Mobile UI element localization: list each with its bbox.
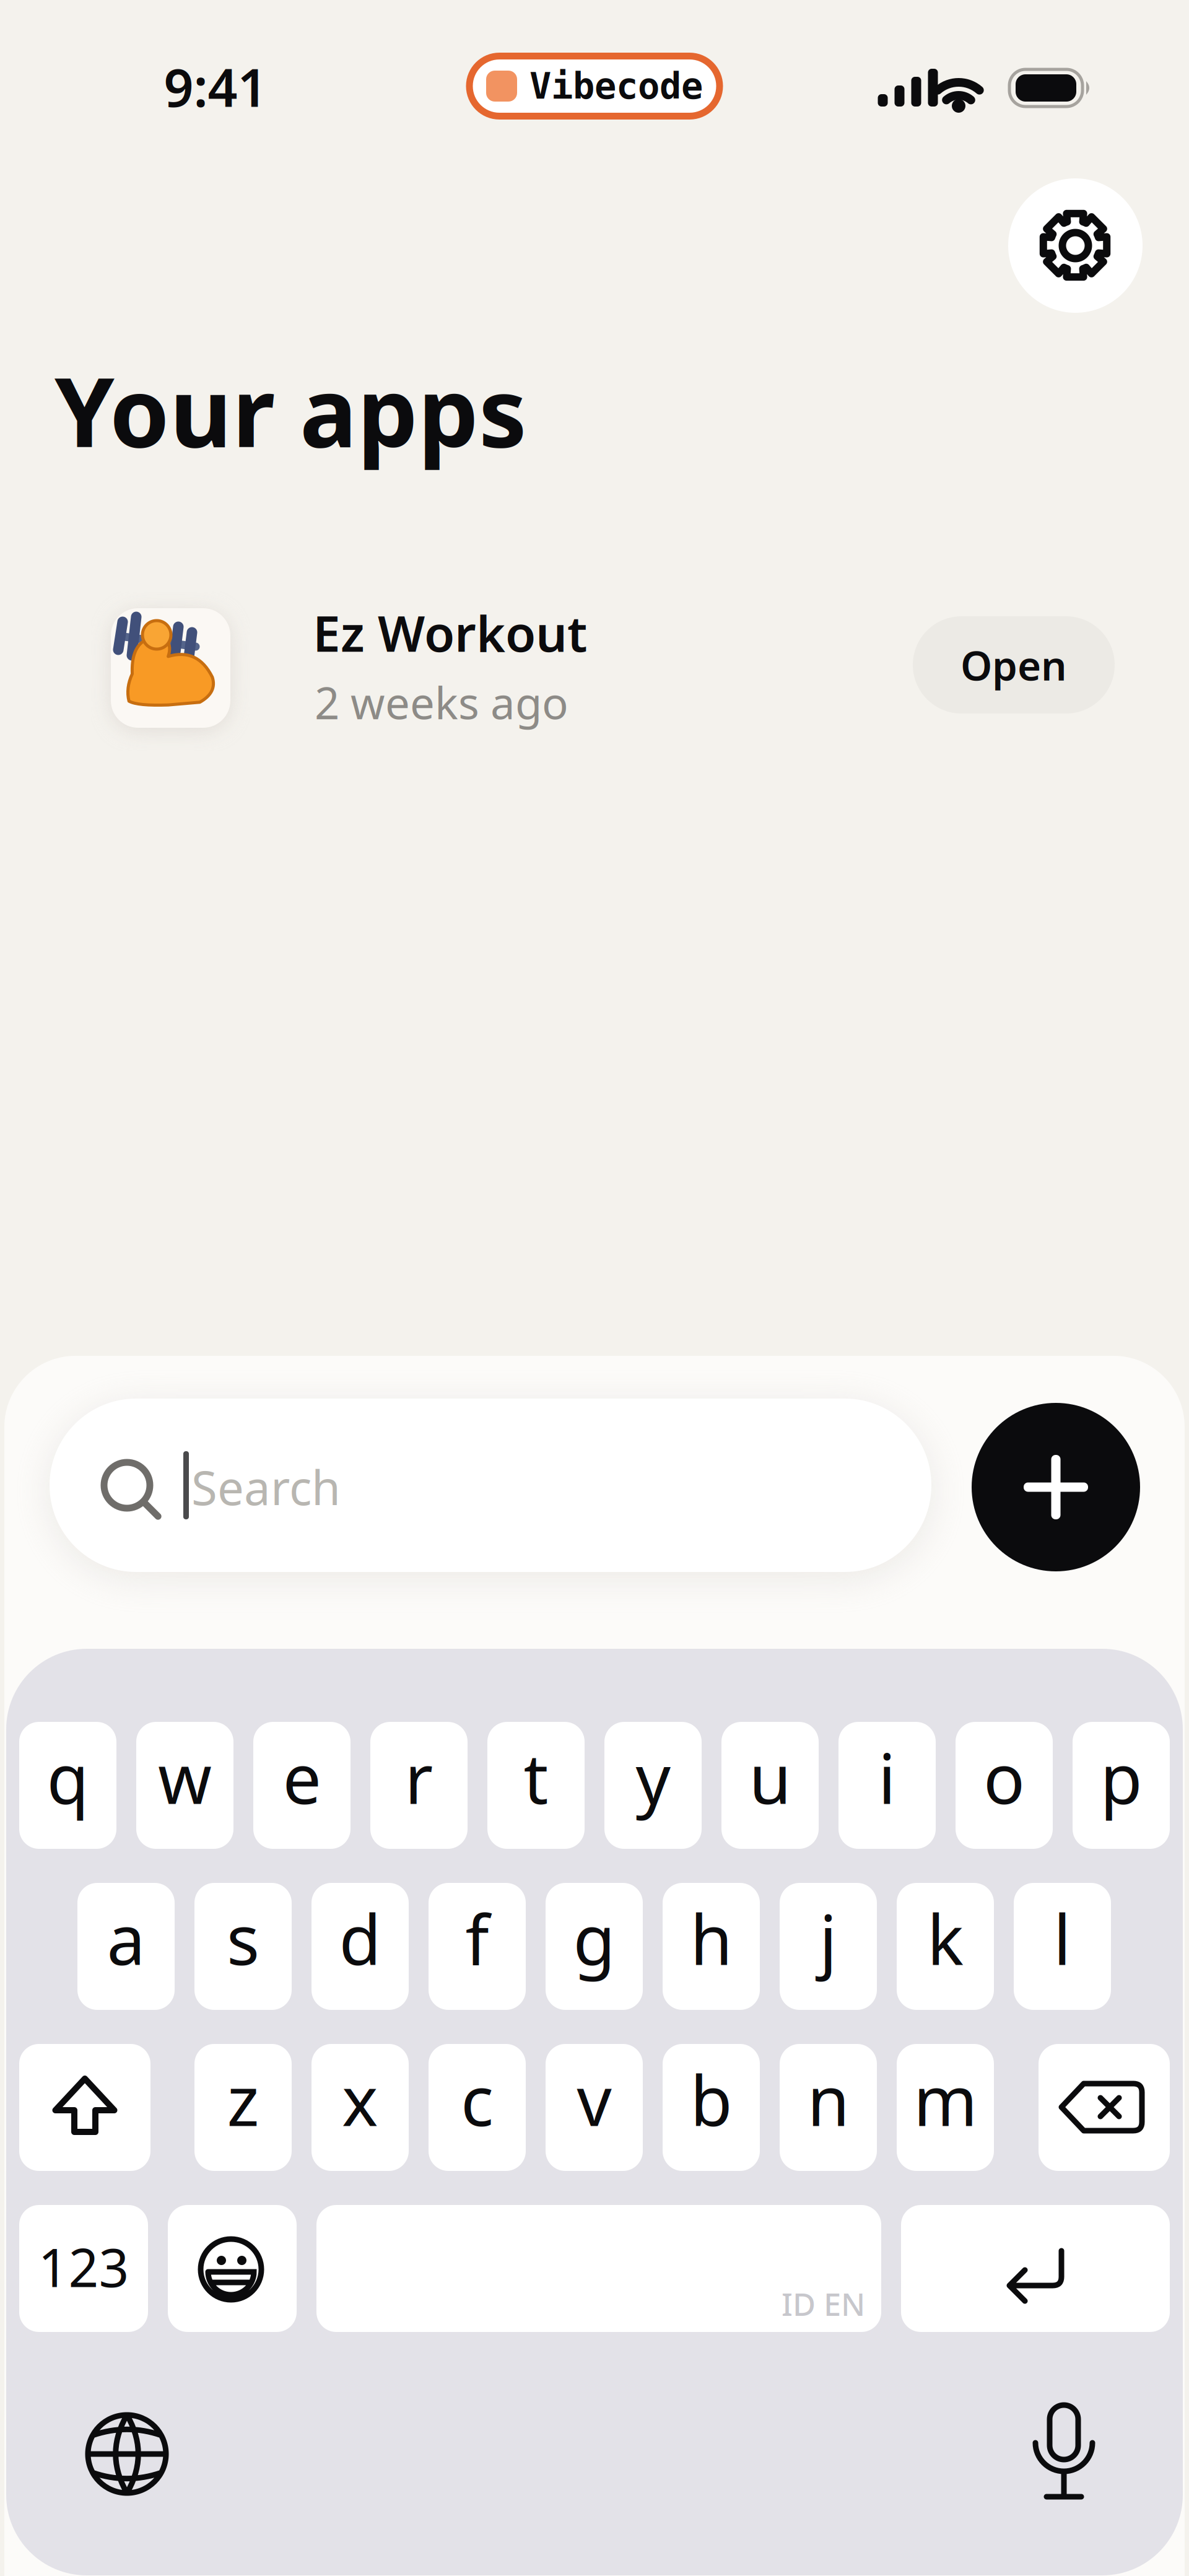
- staticText: c: [461, 2054, 494, 2145]
- button[interactable]: x: [311, 2044, 409, 2171]
- button[interactable]: t: [487, 1722, 585, 1849]
- staticText: Your apps: [54, 346, 527, 473]
- staticText: 123: [38, 2232, 129, 2302]
- staticText: f: [465, 1893, 489, 1984]
- button[interactable]: h: [663, 1883, 760, 2010]
- staticText: v: [577, 2054, 612, 2145]
- staticText: i: [878, 1732, 896, 1823]
- button[interactable]: Next keyboard: [85, 2412, 169, 2496]
- button[interactable]: l: [1014, 1883, 1111, 2010]
- staticText: Open: [960, 638, 1067, 692]
- staticText: 2 weeks ago: [315, 673, 568, 731]
- button[interactable]: v: [546, 2044, 643, 2171]
- button[interactable]: Settings: [1008, 178, 1143, 313]
- staticText: w: [158, 1732, 212, 1823]
- staticText: Vibecode: [529, 65, 703, 107]
- button[interactable]: s: [194, 1883, 292, 2010]
- staticText: e: [283, 1732, 321, 1823]
- staticText: m: [913, 2054, 977, 2145]
- button[interactable]: p: [1073, 1722, 1170, 1849]
- staticText: a: [107, 1893, 145, 1984]
- staticText: b: [690, 2054, 732, 2145]
- button[interactable]: w: [136, 1722, 233, 1849]
- staticText: ID EN: [782, 2283, 865, 2325]
- staticText: 9:41: [164, 52, 267, 121]
- staticText: j: [819, 1893, 837, 1984]
- button[interactable]: f: [429, 1883, 526, 2010]
- button[interactable]: Delete: [1039, 2044, 1170, 2171]
- button[interactable]: Space: [316, 2205, 881, 2332]
- staticText: n: [807, 2054, 849, 2145]
- button[interactable]: a: [77, 1883, 175, 2010]
- button[interactable]: y: [604, 1722, 702, 1849]
- button[interactable]: r: [370, 1722, 468, 1849]
- staticText: Ez Workout: [313, 600, 587, 665]
- staticText: l: [1053, 1893, 1071, 1984]
- button[interactable]: q: [19, 1722, 116, 1849]
- staticText: k: [927, 1893, 964, 1984]
- button[interactable]: e: [253, 1722, 351, 1849]
- button[interactable]: u: [721, 1722, 819, 1849]
- button[interactable]: z: [194, 2044, 292, 2171]
- button[interactable]: New app: [972, 1403, 1140, 1571]
- staticText: u: [749, 1732, 791, 1823]
- staticText: y: [636, 1732, 670, 1823]
- button[interactable]: Numbers: [19, 2205, 148, 2332]
- button[interactable]: Return: [901, 2205, 1170, 2332]
- staticText: q: [47, 1732, 89, 1823]
- button[interactable]: c: [429, 2044, 526, 2171]
- staticText: t: [524, 1732, 548, 1823]
- button[interactable]: Ez Workout: [110, 579, 1115, 728]
- button[interactable]: g: [546, 1883, 643, 2010]
- button[interactable]: m: [897, 2044, 994, 2171]
- button[interactable]: Emoji: [168, 2205, 297, 2332]
- button[interactable]: k: [897, 1883, 994, 2010]
- button[interactable]: b: [663, 2044, 760, 2171]
- staticText: Search: [191, 1456, 341, 1518]
- button[interactable]: i: [838, 1722, 936, 1849]
- staticText: z: [227, 2054, 259, 2145]
- staticText: o: [983, 1732, 1025, 1823]
- button[interactable]: Shift: [19, 2044, 150, 2171]
- button[interactable]: n: [780, 2044, 877, 2171]
- staticText: s: [227, 1893, 259, 1984]
- staticText: g: [573, 1893, 615, 1984]
- staticText: h: [690, 1893, 732, 1984]
- button[interactable]: Dictation: [1017, 2406, 1110, 2499]
- button[interactable]: o: [956, 1722, 1053, 1849]
- staticText: d: [339, 1893, 381, 1984]
- button[interactable]: d: [311, 1883, 409, 2010]
- button[interactable]: Vibecode: [469, 56, 720, 116]
- button[interactable]: j: [780, 1883, 877, 2010]
- staticText: x: [342, 2054, 378, 2145]
- staticText: r: [405, 1732, 433, 1823]
- staticText: p: [1100, 1732, 1142, 1823]
